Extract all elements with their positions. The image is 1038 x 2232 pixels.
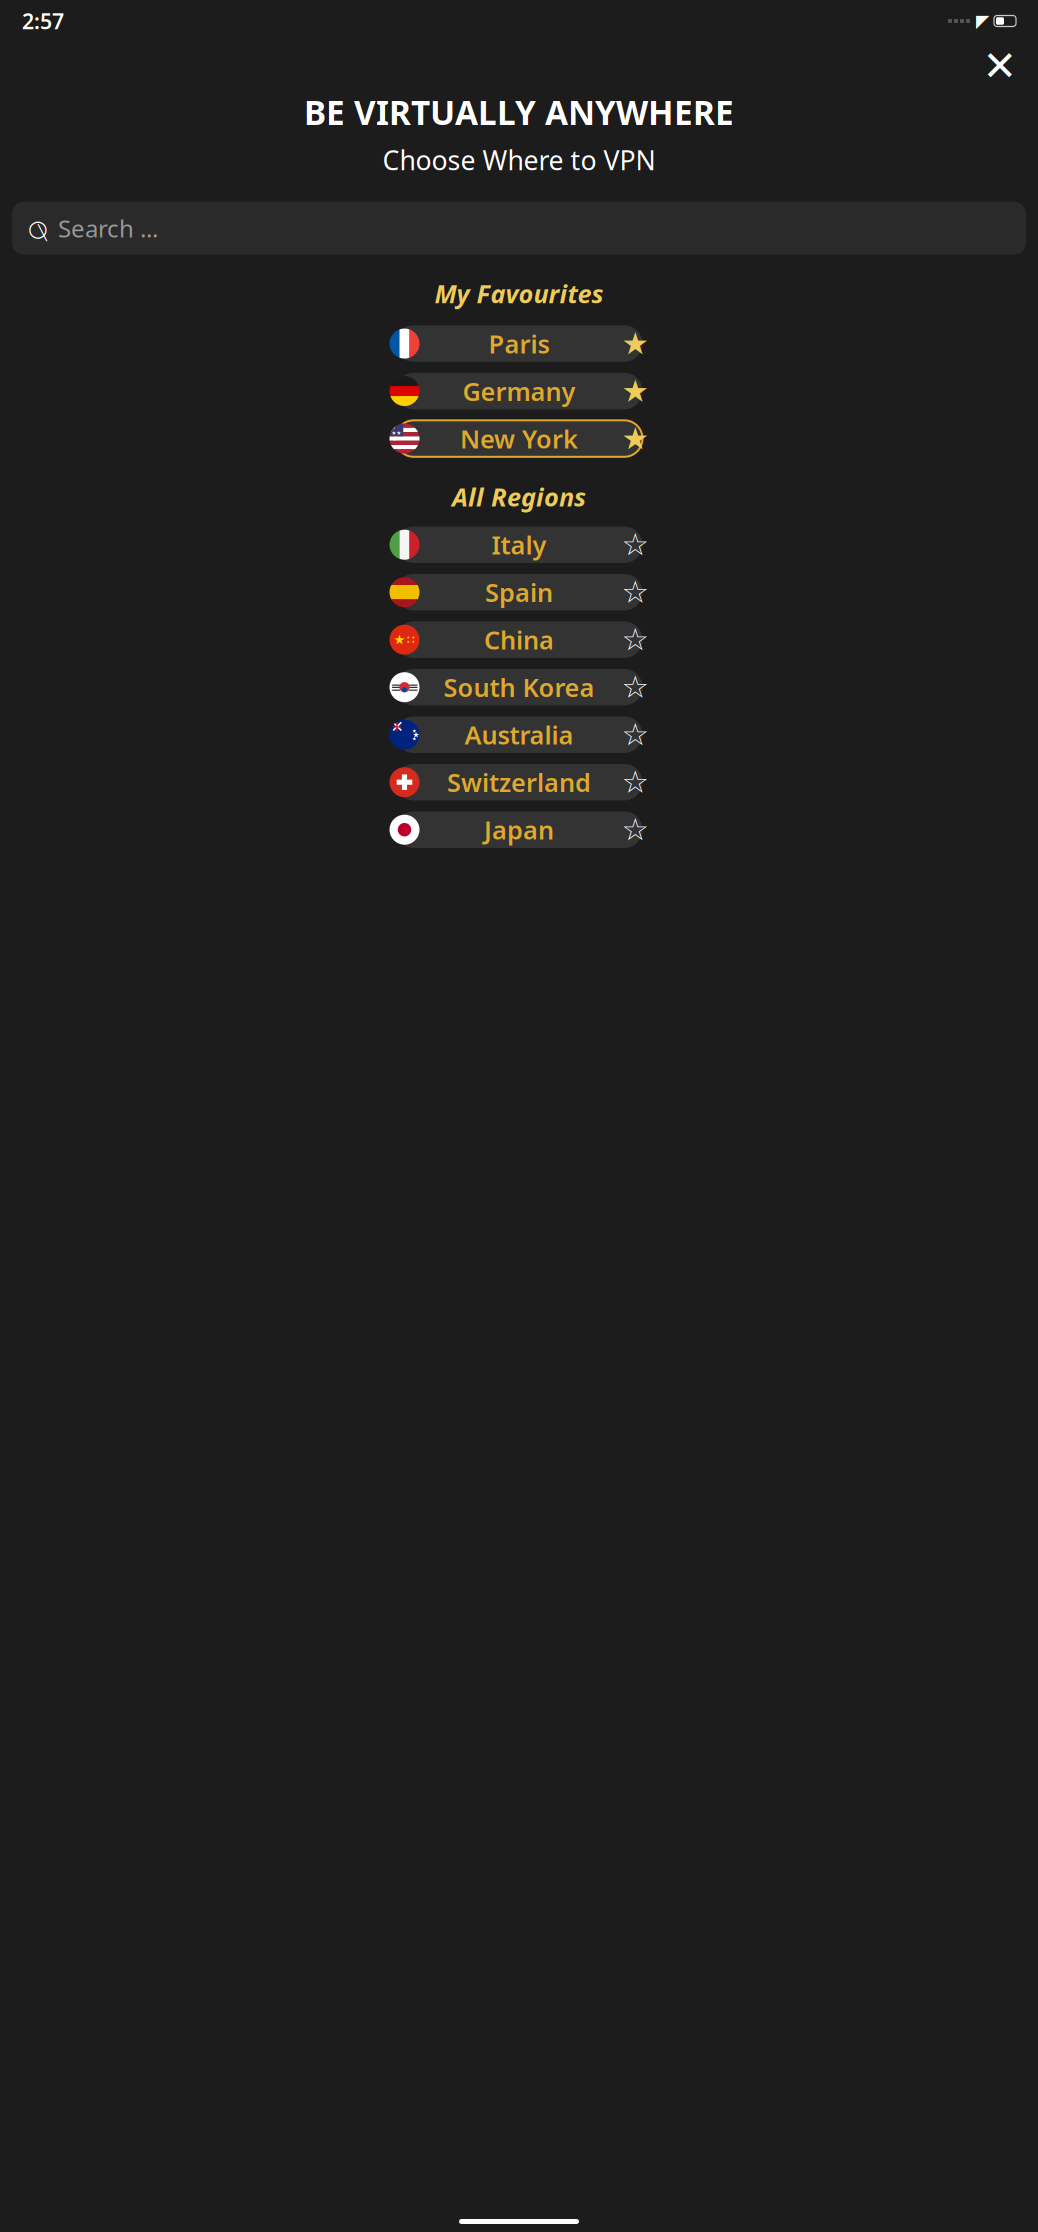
staticText: ★ [412, 730, 419, 739]
staticText: ≡ [408, 680, 419, 695]
staticText: Search ... [58, 212, 158, 244]
staticText: ★★★ ★★★ [391, 418, 401, 442]
button[interactable]: Close [978, 44, 1022, 88]
staticText: All Regions [452, 480, 586, 513]
staticText: Italy [491, 528, 546, 561]
staticText: ★ [621, 421, 648, 456]
staticText: ☆ [621, 527, 648, 562]
button[interactable]: Spain [381, 571, 656, 613]
staticText: ☆ [621, 622, 648, 657]
staticText: ≡ [390, 680, 401, 695]
staticText: ✕ [982, 42, 1017, 89]
button[interactable]: Australia [381, 713, 656, 756]
staticText: + [392, 715, 402, 738]
staticText: ☆ [621, 765, 648, 800]
staticText: Paris [488, 327, 549, 360]
staticText: Spain [485, 575, 553, 609]
staticText: ★ [621, 374, 648, 408]
staticText: Choose Where to VPN [382, 142, 655, 178]
staticText: 2:57 [22, 7, 64, 35]
staticText: ★ ★ [407, 640, 416, 644]
staticText: ○ [28, 215, 48, 241]
button[interactable]: Paris [381, 322, 656, 365]
staticText: ★ [393, 632, 405, 647]
staticText: ☆ [621, 717, 648, 752]
button[interactable]: South Korea [381, 666, 656, 708]
button[interactable]: ○ [12, 202, 1026, 255]
button[interactable]: Germany [381, 370, 656, 412]
staticText: Japan [484, 813, 554, 846]
staticText: Germany [462, 374, 575, 408]
button[interactable]: New York [381, 417, 656, 460]
button[interactable]: Italy [381, 523, 656, 566]
staticText: BE VIRTUALLY ANYWHERE [304, 90, 734, 134]
staticText: ☆ [621, 575, 648, 610]
staticText: ◤ [976, 11, 989, 31]
staticText: New York [460, 422, 578, 455]
staticText: ★ [412, 736, 417, 742]
staticText: My Favourites [434, 277, 603, 310]
staticText: Switzerland [447, 765, 591, 799]
staticText: ╲ [38, 224, 47, 241]
staticText: China [484, 623, 554, 656]
staticText: South Korea [443, 670, 594, 704]
staticText: ✕ [390, 717, 403, 736]
staticText: ★ [621, 326, 648, 361]
staticText: ★ ★ [407, 635, 416, 640]
staticText: ★ [412, 728, 417, 734]
button[interactable]: Japan [381, 808, 656, 851]
button[interactable]: Switzerland [381, 761, 656, 803]
staticText: ☆ [621, 670, 648, 705]
button[interactable]: China [381, 618, 656, 661]
staticText: Australia [464, 718, 573, 751]
staticText: ☆ [621, 812, 648, 847]
